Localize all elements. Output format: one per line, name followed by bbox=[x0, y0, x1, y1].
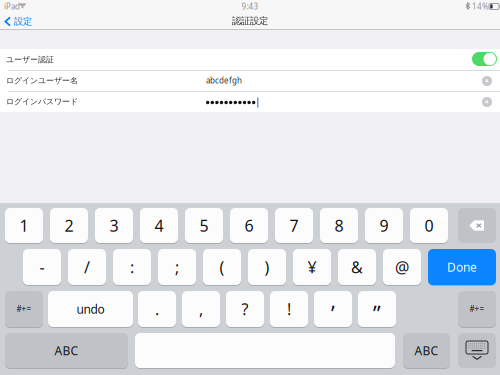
button[interactable]: & bbox=[338, 248, 376, 286]
button[interactable]: . bbox=[138, 290, 176, 328]
staticText: Done bbox=[447, 259, 477, 275]
staticText: ¥ bbox=[307, 256, 316, 278]
staticText: 1 bbox=[19, 215, 28, 236]
staticText: 5 bbox=[199, 215, 208, 236]
staticText: 8 bbox=[334, 215, 343, 236]
staticText: . bbox=[155, 298, 159, 320]
button[interactable]: ABC bbox=[5, 332, 128, 369]
button[interactable]: 1 bbox=[5, 207, 43, 244]
button[interactable]: ) bbox=[248, 248, 286, 286]
staticText: ユーザー認証 bbox=[6, 55, 54, 64]
staticText: #+= bbox=[469, 304, 484, 314]
staticText: ( bbox=[219, 256, 224, 278]
staticText: @ bbox=[395, 256, 409, 278]
staticText: 0 bbox=[424, 215, 433, 236]
staticText: ! bbox=[287, 298, 291, 320]
button[interactable]: #+= bbox=[5, 290, 43, 328]
staticText: 設定 bbox=[14, 16, 32, 27]
button[interactable]: ( bbox=[203, 248, 241, 286]
staticText: iPad bbox=[4, 1, 20, 12]
staticText: - bbox=[39, 256, 44, 278]
button[interactable]: - bbox=[23, 248, 61, 286]
button[interactable]: 3 bbox=[95, 207, 133, 244]
staticText: ” bbox=[373, 299, 381, 328]
button[interactable]: 削除 bbox=[458, 208, 496, 243]
staticText: ログインパスワード bbox=[6, 97, 78, 106]
button[interactable]: 4 bbox=[140, 207, 178, 244]
staticText: undo bbox=[76, 301, 104, 317]
button[interactable]: ! bbox=[270, 290, 308, 328]
staticText: 9 bbox=[379, 215, 388, 236]
button[interactable]: キーボードを閉じる bbox=[458, 333, 496, 368]
staticText: & bbox=[351, 256, 363, 278]
staticText: : bbox=[130, 256, 134, 278]
staticText: 4 bbox=[154, 215, 163, 236]
button[interactable]: ABC bbox=[403, 332, 450, 369]
button[interactable]: ユーザー認証 bbox=[471, 51, 498, 67]
staticText: ABC bbox=[54, 342, 78, 358]
button[interactable]: 5 bbox=[185, 207, 223, 244]
staticText: ? bbox=[241, 298, 248, 320]
staticText: 7 bbox=[289, 215, 298, 236]
staticText: ’ bbox=[331, 299, 335, 328]
button[interactable]: : bbox=[113, 248, 151, 286]
button[interactable]: 6 bbox=[230, 207, 268, 244]
button[interactable]: 0 bbox=[410, 207, 448, 244]
button[interactable]: 2 bbox=[50, 207, 88, 244]
staticText: ABC bbox=[414, 342, 438, 358]
staticText: #+= bbox=[16, 304, 31, 314]
button[interactable]: 7 bbox=[275, 207, 313, 244]
button[interactable]: / bbox=[68, 248, 106, 286]
button[interactable]: #+= bbox=[458, 290, 496, 328]
staticText: ) bbox=[264, 256, 269, 278]
staticText: 2 bbox=[64, 215, 73, 236]
button[interactable]: クリア bbox=[480, 95, 494, 109]
button[interactable]: Done bbox=[428, 248, 496, 286]
button[interactable]: , bbox=[182, 290, 220, 328]
staticText: 3 bbox=[109, 215, 118, 236]
button[interactable]: 8 bbox=[320, 207, 358, 244]
staticText: ; bbox=[175, 256, 179, 278]
staticText: 認証設定 bbox=[232, 15, 268, 27]
button[interactable]: 設定 bbox=[1, 15, 41, 28]
button[interactable]: ” bbox=[358, 290, 396, 328]
staticText: 14% bbox=[472, 1, 489, 12]
staticText: / bbox=[84, 256, 90, 278]
button[interactable]: undo bbox=[48, 290, 133, 328]
button[interactable]: クリア bbox=[480, 74, 494, 88]
button[interactable]: 9 bbox=[365, 207, 403, 244]
staticText: 6 bbox=[244, 215, 253, 236]
staticText: abcdefgh bbox=[206, 75, 242, 86]
button[interactable]: @ bbox=[383, 248, 421, 286]
button[interactable]: ’ bbox=[314, 290, 352, 328]
button[interactable]: ? bbox=[226, 290, 264, 328]
button[interactable] bbox=[135, 332, 395, 369]
button[interactable]: ¥ bbox=[293, 248, 331, 286]
staticText: ログインユーザー名 bbox=[6, 76, 78, 85]
button[interactable]: ; bbox=[158, 248, 196, 286]
staticText: 9:43 bbox=[241, 1, 258, 12]
staticText: , bbox=[199, 298, 203, 320]
